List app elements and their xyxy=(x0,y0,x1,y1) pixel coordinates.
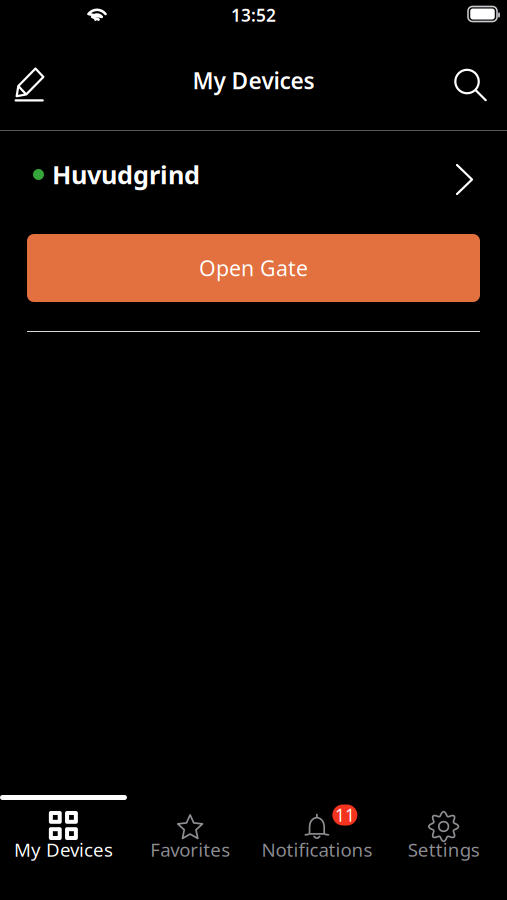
button[interactable]: Huvudgrind xyxy=(0,131,507,224)
staticText: Huvudgrind xyxy=(52,158,200,191)
staticText: 13:52 xyxy=(231,3,276,26)
button[interactable]: Settings xyxy=(380,808,507,859)
staticText: Open Gate xyxy=(199,254,308,282)
button[interactable]: My Devices xyxy=(0,808,127,859)
staticText: Favorites xyxy=(150,837,230,862)
button[interactable]: Open Gate xyxy=(0,234,507,302)
button[interactable]: Search xyxy=(438,50,507,109)
button[interactable]: 11 xyxy=(253,808,380,859)
button[interactable]: Edit xyxy=(0,49,63,110)
staticText: My Devices xyxy=(192,65,314,95)
button[interactable]: Favorites xyxy=(127,808,254,859)
staticText: Settings xyxy=(408,837,480,862)
staticText: Notifications xyxy=(261,837,372,862)
staticText: My Devices xyxy=(14,837,113,862)
staticText: 11 xyxy=(335,803,355,826)
